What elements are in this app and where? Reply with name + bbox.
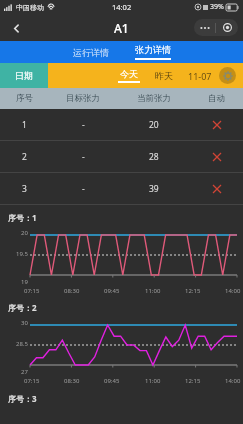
staticText: 19.5	[16, 250, 28, 258]
staticText: 39	[149, 183, 159, 195]
staticText: 11-07	[188, 70, 212, 82]
staticText: 序号	[16, 93, 33, 104]
staticText: 20	[149, 119, 159, 131]
button[interactable]: More	[194, 19, 215, 36]
button[interactable]: 张力详情	[122, 41, 184, 63]
button[interactable]: Close	[216, 19, 238, 36]
staticText: 序号：1	[8, 212, 37, 223]
staticText: 08:30	[64, 287, 80, 295]
staticText: 09:45	[104, 377, 120, 385]
staticText: 目标张力	[66, 93, 100, 104]
staticText: A1	[114, 20, 129, 36]
staticText: -	[82, 183, 85, 195]
button[interactable]: Settings	[219, 67, 236, 84]
staticText: -	[82, 119, 85, 131]
staticText: 08:30	[64, 377, 80, 385]
button[interactable]: Back	[6, 18, 26, 38]
staticText: 09:45	[104, 287, 120, 295]
staticText: 12:15	[185, 377, 201, 385]
staticText: 日期	[15, 70, 33, 81]
staticText: 07:15	[24, 287, 40, 295]
staticText: 14:02	[112, 2, 132, 12]
staticText: 28.5	[16, 340, 28, 348]
staticText: 当前张力	[137, 93, 171, 104]
button[interactable]: 运行详情	[60, 41, 122, 63]
staticText: 39%	[210, 2, 224, 12]
staticText: 中国移动	[16, 3, 44, 12]
staticText: 序号：2	[8, 302, 37, 313]
staticText: 运行详情	[73, 47, 109, 58]
staticText: 3	[22, 183, 27, 195]
staticText: 28	[149, 151, 159, 163]
staticText: 昨天	[155, 70, 173, 81]
button[interactable]: 1	[0, 109, 243, 140]
staticText: 14:00	[225, 287, 241, 295]
staticText: 11:00	[145, 377, 161, 385]
staticText: 14:00	[225, 377, 241, 385]
staticText: 20	[21, 229, 28, 237]
button[interactable]: 今天	[111, 63, 147, 88]
staticText: 07:15	[24, 377, 40, 385]
staticText: 1	[22, 119, 27, 131]
staticText: 11:00	[145, 287, 161, 295]
staticText: 27	[21, 368, 28, 376]
staticText: 30	[21, 319, 28, 327]
staticText: 19	[21, 278, 28, 286]
button[interactable]: 3	[0, 173, 243, 204]
staticText: 12:15	[185, 287, 201, 295]
button[interactable]: 11-07	[181, 63, 219, 88]
button[interactable]: 昨天	[147, 63, 181, 88]
staticText: 2	[22, 151, 27, 163]
button[interactable]: 2	[0, 141, 243, 172]
staticText: 张力详情	[135, 44, 171, 55]
staticText: 序号：3	[8, 393, 37, 404]
button[interactable]: 日期	[0, 63, 48, 88]
staticText: 自动	[208, 93, 225, 104]
staticText: -	[82, 151, 85, 163]
staticText: 今天	[120, 68, 138, 79]
